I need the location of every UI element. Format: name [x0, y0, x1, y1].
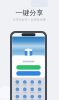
staticText: 分享给好友一起领取优惠: [13, 18, 46, 21]
staticText: 一键分享: [15, 9, 43, 17]
